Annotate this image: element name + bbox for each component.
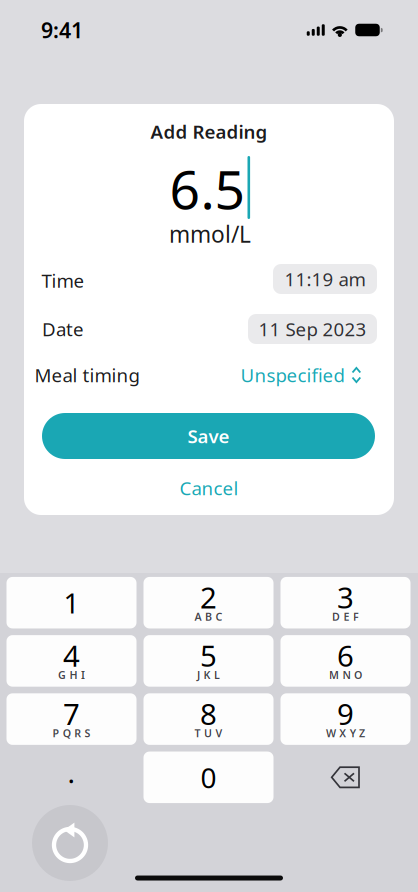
button[interactable]: 8	[143, 693, 273, 745]
staticText: mmol/L	[169, 219, 251, 249]
staticText: E	[343, 610, 349, 624]
staticText: J	[197, 668, 200, 682]
staticText: Y	[350, 726, 356, 740]
staticText: P	[52, 726, 59, 740]
staticText: S	[85, 726, 91, 740]
button[interactable]: 7	[6, 693, 136, 745]
staticText: 9:41	[41, 16, 83, 44]
staticText: 11 Sep 2023	[258, 317, 366, 341]
staticText: O	[354, 668, 362, 682]
staticText: N	[342, 668, 350, 682]
staticText: Unspecified	[240, 363, 344, 387]
button[interactable]: Save	[42, 413, 375, 459]
staticText: W	[326, 726, 336, 740]
staticText: 6	[337, 636, 354, 675]
button[interactable]: 5	[143, 635, 273, 687]
button[interactable]: Undo	[32, 805, 108, 881]
staticText: 0	[200, 759, 216, 796]
staticText: 11:19 am	[284, 267, 365, 291]
staticText: F	[353, 610, 359, 624]
button[interactable]: Decimal point	[6, 752, 136, 803]
staticText: H	[69, 668, 77, 682]
staticText: Z	[359, 726, 365, 740]
staticText: Date	[42, 317, 84, 341]
button[interactable]: Unspecified	[240, 363, 361, 387]
staticText: 7	[63, 694, 80, 733]
staticText: Save	[187, 424, 229, 448]
staticText: 3	[337, 578, 354, 617]
staticText: L	[214, 668, 220, 682]
button[interactable]: 1	[6, 577, 136, 628]
staticText: 6.5	[169, 153, 245, 224]
staticText: M	[329, 668, 339, 682]
staticText: X	[339, 726, 346, 740]
staticText: V	[215, 726, 222, 740]
button[interactable]: 3	[280, 577, 410, 628]
button[interactable]: 9	[280, 693, 410, 745]
staticText: 2	[200, 578, 217, 617]
staticText: A	[195, 610, 202, 624]
staticText: I	[81, 668, 85, 682]
button[interactable]: Delete	[280, 752, 410, 803]
button[interactable]: 11 Sep 2023	[248, 314, 377, 344]
staticText: Q	[63, 726, 71, 740]
button[interactable]: 4	[6, 635, 136, 687]
staticText: D	[332, 610, 340, 624]
staticText: 9	[337, 694, 354, 733]
staticText: G	[58, 668, 66, 682]
button[interactable]: Cancel	[154, 471, 264, 505]
button[interactable]: 2	[143, 577, 273, 628]
button[interactable]: 6	[280, 635, 410, 687]
staticText: Cancel	[179, 476, 238, 500]
button[interactable]: 0	[143, 752, 273, 803]
staticText: Add Reading	[150, 119, 267, 144]
staticText: 1	[63, 584, 79, 621]
staticText: C	[215, 610, 222, 624]
staticText: K	[203, 668, 210, 682]
staticText: B	[205, 610, 212, 624]
staticText: Meal timing	[34, 363, 139, 387]
button[interactable]: 11:19 am	[273, 264, 377, 294]
staticText: Time	[41, 268, 84, 293]
staticText: 8	[200, 694, 217, 733]
staticText: .	[67, 754, 75, 791]
staticText: T	[195, 726, 201, 740]
staticText: U	[204, 726, 212, 740]
staticText: 5	[200, 636, 217, 675]
staticText: R	[74, 726, 81, 740]
staticText: 4	[63, 636, 80, 675]
